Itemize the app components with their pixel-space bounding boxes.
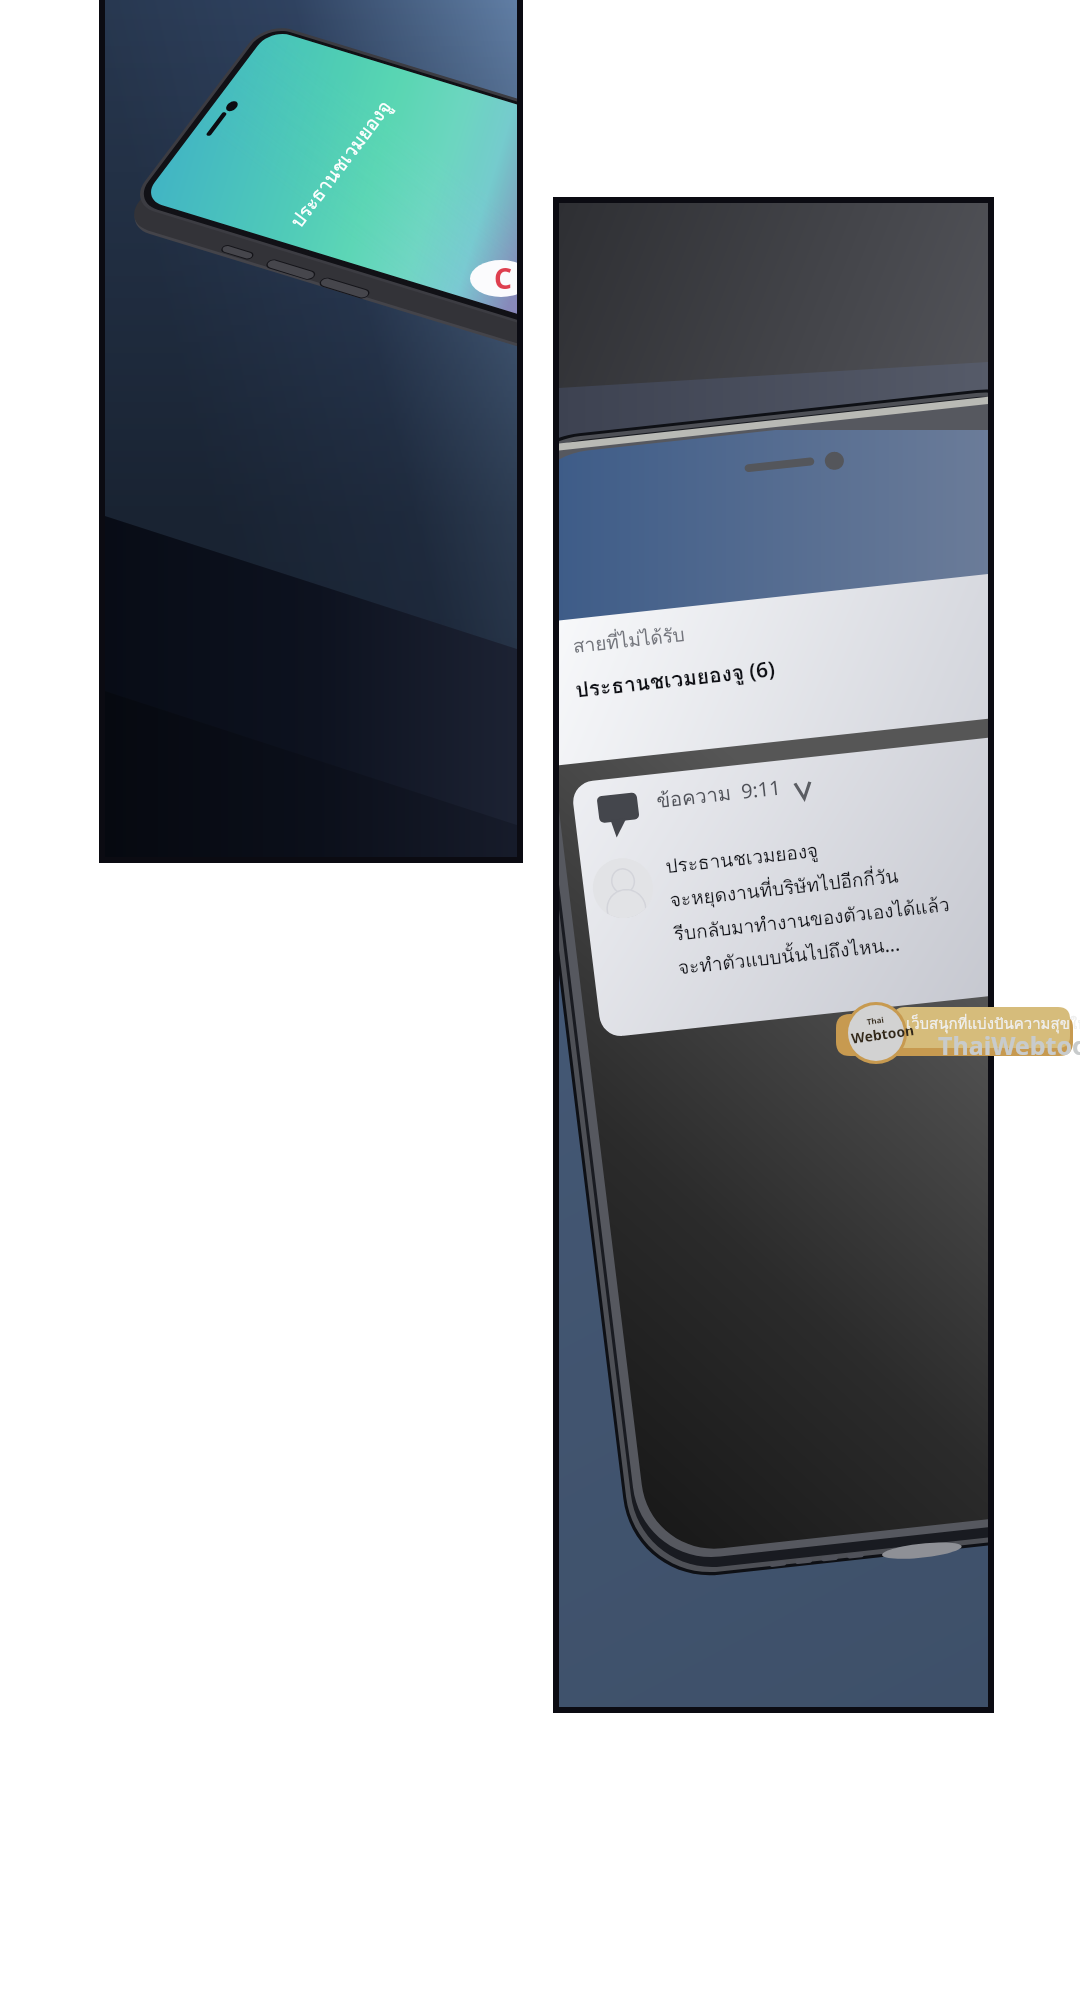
button[interactable]	[0, 0, 1080, 2000]
